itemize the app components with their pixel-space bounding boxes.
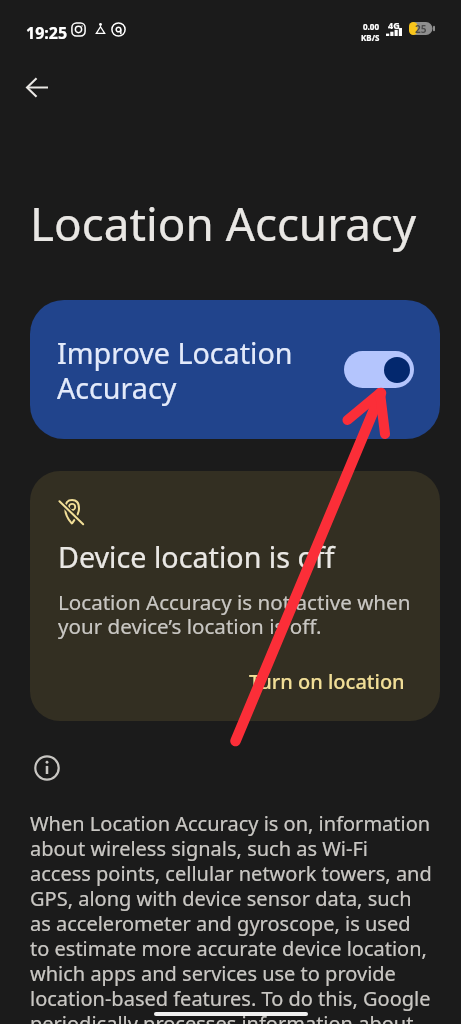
staticText: 25 bbox=[415, 22, 427, 35]
staticText: Turn on location bbox=[249, 668, 405, 695]
staticText: 19:25 bbox=[26, 22, 68, 44]
staticText: KB/S bbox=[361, 32, 380, 43]
staticText: Location Accuracy bbox=[30, 192, 417, 254]
button[interactable]: Turn on location bbox=[249, 668, 405, 695]
staticText: 0.00 bbox=[363, 21, 379, 32]
staticText: Improve Location Accuracy bbox=[57, 333, 293, 407]
button[interactable]: Improve Location Accuracy toggle bbox=[344, 351, 414, 388]
staticText: Device location is off bbox=[58, 537, 335, 576]
staticText: Location Accuracy is not active when you… bbox=[58, 588, 413, 640]
staticText: When Location Accuracy is on, informatio… bbox=[30, 810, 434, 1024]
button[interactable]: Back bbox=[14, 64, 60, 110]
button[interactable]: Improve Location Accuracy bbox=[30, 300, 440, 439]
staticText: 4G bbox=[388, 19, 400, 31]
